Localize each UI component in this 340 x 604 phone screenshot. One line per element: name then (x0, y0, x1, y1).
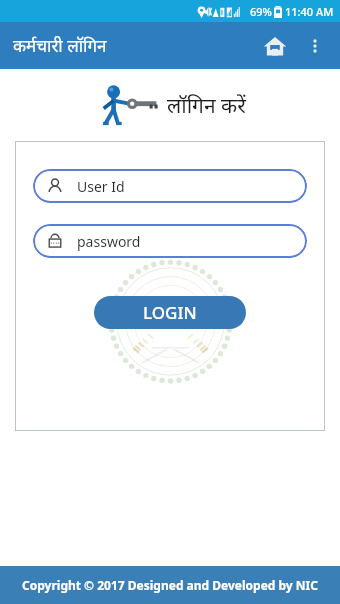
button[interactable]: More options (296, 27, 334, 65)
staticText: password (77, 232, 141, 251)
staticText: लॉगिन करें (167, 91, 246, 120)
staticText: कर्मचारी लॉगिन (13, 34, 107, 57)
button[interactable]: LOGIN (94, 296, 246, 329)
staticText: 11:40 AM (285, 4, 334, 19)
button[interactable]: Home (254, 25, 296, 67)
staticText: LOGIN (143, 301, 197, 324)
staticText: User Id (77, 177, 125, 196)
button[interactable]: User Id (33, 169, 307, 203)
staticText: Copyright © 2017 Designed and Developed … (22, 577, 318, 593)
staticText: 69% (250, 4, 272, 19)
button[interactable]: password (33, 224, 307, 258)
